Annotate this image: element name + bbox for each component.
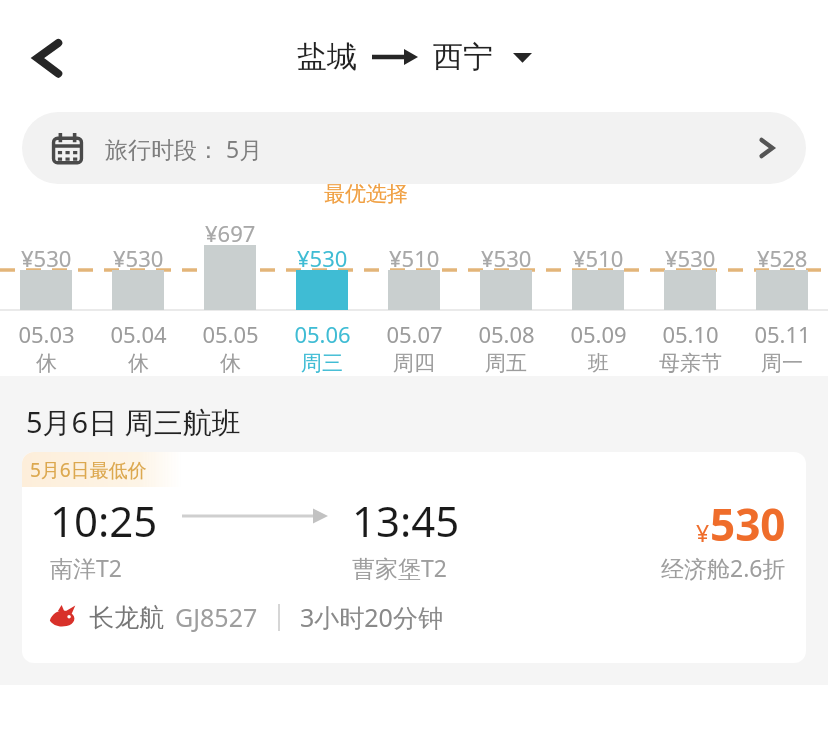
staticText: 西宁	[433, 38, 493, 76]
staticText: 周五	[485, 350, 527, 376]
button[interactable]: Back	[20, 29, 78, 87]
staticText: 05.05	[202, 319, 259, 349]
button[interactable]: ¥530	[460, 208, 552, 376]
staticText: 05.11	[754, 319, 811, 349]
staticText: 母亲节	[659, 350, 722, 376]
staticText: 05.07	[386, 319, 443, 349]
button[interactable]: 最优选择	[276, 208, 368, 376]
staticText: GJ8527	[175, 600, 258, 634]
staticText: 长龙航	[89, 602, 164, 633]
button[interactable]: ¥530	[92, 208, 184, 376]
staticText: 班	[588, 350, 609, 376]
staticText: 南洋T2	[50, 552, 122, 583]
staticText: 05.04	[110, 319, 167, 349]
staticText: 13:45	[352, 492, 460, 549]
staticText: 05.06	[294, 319, 351, 349]
staticText: 530	[710, 494, 786, 554]
button[interactable]: ¥510	[552, 208, 644, 376]
staticText: 周一	[761, 350, 803, 376]
staticText: 盐城	[297, 38, 357, 76]
staticText: 休	[36, 350, 57, 376]
staticText: ¥528	[757, 243, 808, 273]
staticText: ¥697	[205, 218, 256, 248]
staticText: ¥530	[665, 243, 716, 273]
staticText: 休	[220, 350, 241, 376]
button[interactable]: 5月6日最低价	[22, 452, 806, 663]
staticText: 3小时20分钟	[300, 600, 443, 634]
staticText: 周四	[393, 350, 435, 376]
staticText: ¥	[696, 517, 710, 548]
staticText: ¥530	[113, 243, 164, 273]
button[interactable]: ¥510	[368, 208, 460, 376]
staticText: 曹家堡T2	[352, 552, 447, 583]
staticText: ¥530	[481, 243, 532, 273]
staticText: 最优选择	[324, 181, 408, 207]
staticText: 经济舱2.6折	[661, 552, 786, 583]
staticText: 5月6日最低价	[30, 457, 147, 483]
button[interactable]: ¥530	[644, 208, 736, 376]
button[interactable]: ¥530	[0, 208, 92, 376]
staticText: ¥530	[297, 243, 348, 273]
staticText: 05.09	[570, 319, 627, 349]
staticText: 10:25	[50, 492, 158, 549]
button[interactable]: 旅行时段： 5月	[22, 112, 806, 184]
staticText: 05.08	[478, 319, 535, 349]
button[interactable]: ¥528	[736, 208, 828, 376]
staticText: ¥530	[21, 243, 72, 273]
button[interactable]: 盐城	[293, 34, 536, 80]
staticText: 周三	[301, 350, 343, 376]
staticText: ¥510	[573, 243, 624, 273]
staticText: 旅行时段： 5月	[105, 133, 263, 164]
staticText: 05.03	[18, 319, 75, 349]
staticText: 05.10	[662, 319, 719, 349]
staticText: ¥510	[389, 243, 440, 273]
staticText: 休	[128, 350, 149, 376]
staticText: 5月6日 周三航班	[26, 402, 241, 442]
button[interactable]: ¥697	[184, 208, 276, 376]
